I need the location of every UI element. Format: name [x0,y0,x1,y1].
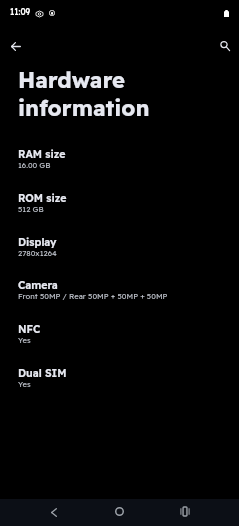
button[interactable]: Back [4,34,28,58]
staticText: Camera [18,278,58,291]
button[interactable]: RAM size [0,147,239,170]
button[interactable]: Back [40,499,68,526]
staticText: Dual SIM [18,366,67,379]
staticText: Yes [18,379,31,389]
button[interactable]: NFC [0,322,239,345]
staticText: 16.00 GB [18,160,51,170]
button[interactable]: Recents [171,498,199,525]
staticText: Yes [18,335,31,345]
button[interactable]: Search [213,34,237,58]
button[interactable]: ROM size [0,191,239,214]
button[interactable]: Dual SIM [0,366,239,389]
staticText: 11:09 [10,7,31,17]
staticText: RAM size [18,147,66,160]
staticText: ROM size [18,191,67,204]
staticText: 512 GB [18,204,44,214]
staticText: NFC [18,322,41,335]
button[interactable]: Home [105,498,133,525]
staticText: 2780x1264 [18,248,57,258]
staticText: Front 50MP / Rear 50MP + 50MP + 50MP [18,291,168,301]
staticText: Display [18,235,57,248]
button[interactable]: Display [0,235,239,258]
button[interactable]: Camera [0,278,239,301]
staticText: Hardware information [18,66,188,122]
